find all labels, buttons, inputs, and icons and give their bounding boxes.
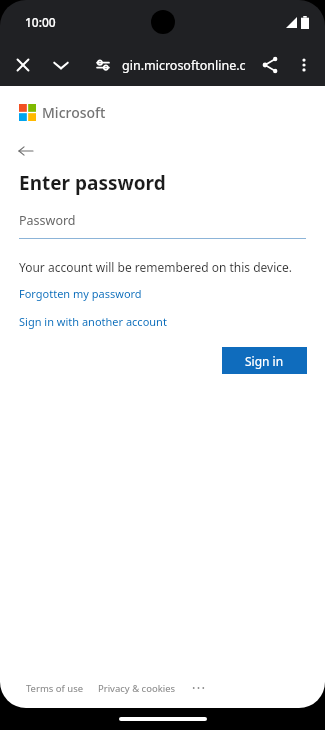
button[interactable]: More options (287, 48, 321, 82)
staticText: Sign in (245, 353, 284, 369)
button[interactable]: Sign in (222, 347, 307, 374)
button[interactable]: Privacy & cookies (98, 682, 176, 695)
button[interactable]: Site settings (86, 48, 120, 82)
staticText: Enter password (19, 170, 166, 196)
button[interactable]: Forgotten my password (19, 286, 142, 301)
button[interactable]: Share (253, 48, 287, 82)
button[interactable]: Sign in with another account (19, 314, 167, 329)
staticText: Terms of use (26, 682, 84, 695)
staticText: Password (19, 212, 76, 229)
button[interactable]: Collapse (44, 48, 78, 82)
button[interactable]: Close (6, 48, 40, 82)
staticText: Microsoft (42, 103, 106, 122)
staticText: 10:00 (25, 14, 56, 30)
button[interactable]: Terms of use (26, 682, 84, 695)
button[interactable]: More (189, 681, 207, 695)
staticText: Your account will be remembered on this … (19, 259, 293, 275)
staticText: gin.microsoftonline.com (122, 57, 253, 74)
button[interactable]: Password (19, 212, 306, 239)
staticText: Sign in with another account (19, 314, 167, 329)
staticText: Privacy & cookies (98, 682, 176, 695)
staticText: Forgotten my password (19, 286, 142, 301)
button[interactable]: Back (13, 138, 39, 164)
